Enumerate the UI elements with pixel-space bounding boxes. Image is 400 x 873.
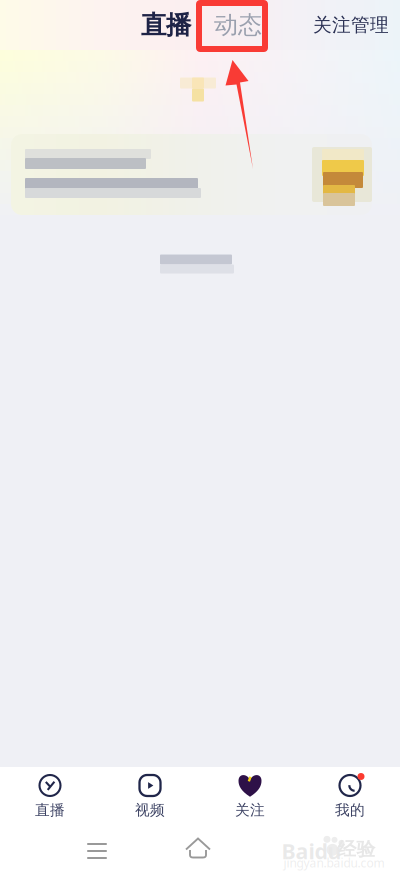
button[interactable]: 直播 <box>141 9 191 40</box>
staticText: 视频 <box>135 801 165 819</box>
button[interactable]: 关注 <box>200 767 300 825</box>
button[interactable]: 直播 <box>0 767 100 825</box>
staticText: Baidu <box>281 837 341 865</box>
button[interactable]: 动态 <box>214 10 262 40</box>
button[interactable]: 我的 <box>300 767 400 825</box>
button[interactable]: Home <box>176 828 220 868</box>
staticText: 经验 <box>337 838 375 861</box>
staticText: 关注 <box>235 801 265 819</box>
staticText: jingyan.baidu.com <box>283 855 384 871</box>
staticText: 直播 <box>141 9 191 40</box>
button[interactable]: 视频 <box>100 767 200 825</box>
staticText: 动态 <box>214 10 262 40</box>
button[interactable]: 关注管理 <box>313 13 389 36</box>
button[interactable]: Recent apps <box>75 831 119 871</box>
staticText: 直播 <box>35 801 65 819</box>
staticText: 关注管理 <box>313 13 389 36</box>
staticText: 我的 <box>335 801 365 819</box>
